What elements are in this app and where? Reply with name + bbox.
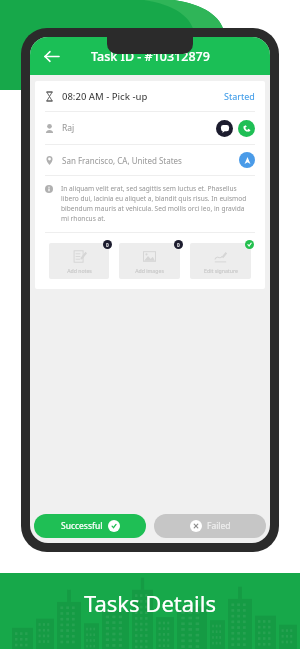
staticText: Failed (207, 520, 231, 532)
staticText: San Francisco, CA, United States (62, 155, 182, 166)
button[interactable]: Raj (35, 112, 265, 144)
button[interactable]: Back (36, 41, 66, 71)
staticText: Tasks Details (84, 588, 217, 618)
button[interactable]: Successful (34, 514, 146, 538)
staticText: Task ID - #10312879 (91, 48, 210, 65)
staticText: 0 (177, 242, 180, 248)
staticText: In aliquam velit erat, sed sagittis sem … (61, 184, 253, 223)
button[interactable]: Add images (119, 243, 180, 279)
staticText: Add notes (67, 267, 92, 274)
staticText: Started (224, 90, 255, 102)
button[interactable]: Failed (154, 514, 266, 538)
button[interactable]: Call (238, 120, 255, 137)
staticText: 08:20 AM - Pick -up (62, 90, 148, 103)
staticText: Raj (62, 122, 75, 134)
staticText: 0 (106, 242, 109, 248)
staticText: Add images (135, 267, 164, 274)
button[interactable]: Edit signature (190, 243, 251, 279)
button[interactable]: Add notes (49, 243, 109, 279)
staticText: Edit signature (204, 267, 238, 274)
button[interactable]: San Francisco, CA, United States (35, 145, 265, 175)
button[interactable]: Navigate (239, 152, 255, 168)
staticText: Successful (61, 520, 103, 532)
button[interactable]: 08:20 AM - Pick -up (35, 81, 265, 111)
button[interactable]: Chat (216, 120, 233, 137)
